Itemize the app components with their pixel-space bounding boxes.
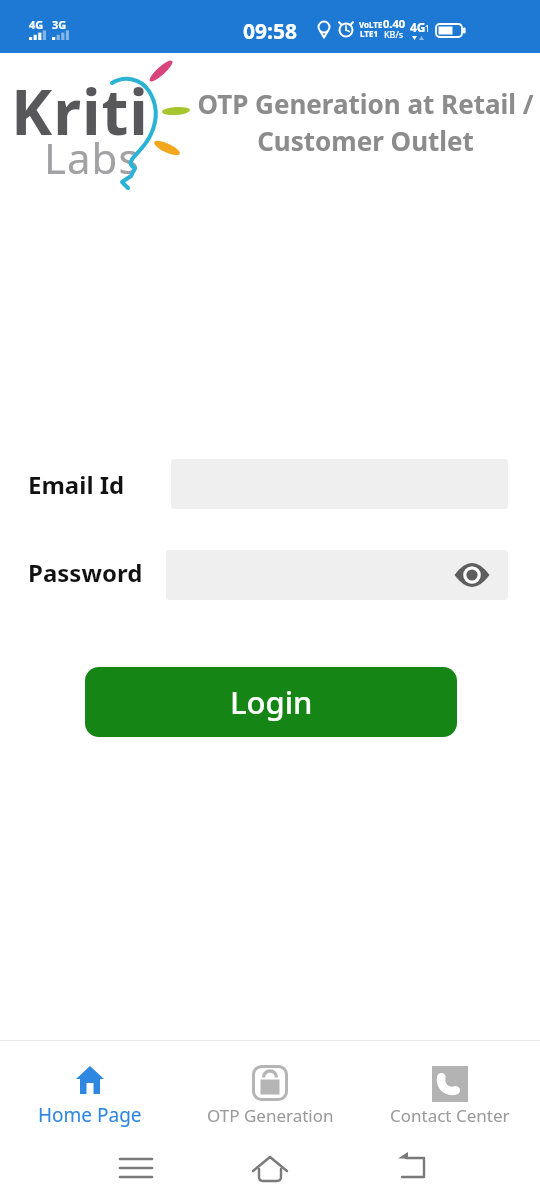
staticText: 4G [29,17,44,32]
staticText: LTE1 [360,28,378,39]
staticText: VoLTE [359,19,383,30]
staticText: 09:58 [243,17,297,46]
button[interactable] [166,550,508,600]
button[interactable]: Login [85,667,457,737]
staticText: Login [230,681,313,723]
staticText: OTP Generation [207,1104,334,1127]
staticText: 3G [52,17,67,32]
staticText: Labs [44,129,140,186]
staticText: Home Page [38,1102,142,1128]
staticText: 1 [425,23,430,34]
button[interactable] [120,1135,152,1200]
staticText: 4G [410,19,426,35]
button[interactable]: Home Page [20,1041,160,1135]
staticText: KB/s [384,28,404,40]
button[interactable] [450,550,494,600]
staticText: Password [28,556,143,589]
staticText: 0.40 [383,16,405,31]
button[interactable] [396,1135,426,1200]
staticText: OTP Generation at Retail / Customer Outl… [197,86,534,159]
button[interactable]: Contact Center [380,1041,520,1135]
button[interactable]: OTP Generation [200,1041,340,1135]
staticText: Contact Center [390,1104,510,1127]
staticText: Email Id [28,468,125,501]
staticText: Kriti [11,69,149,153]
button[interactable] [252,1135,288,1200]
